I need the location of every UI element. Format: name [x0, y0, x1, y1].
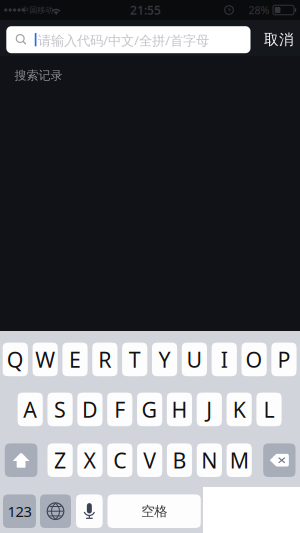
staticText: C — [113, 446, 126, 474]
staticText: X — [83, 446, 96, 474]
staticText: P — [277, 345, 290, 373]
button[interactable]: E — [62, 343, 88, 376]
staticText: Q — [7, 345, 24, 373]
staticText: Y — [158, 345, 170, 373]
staticText: U — [186, 345, 202, 373]
button[interactable]: Next keyboard — [40, 494, 71, 528]
button[interactable]: B — [167, 443, 192, 477]
staticText: H — [171, 395, 187, 423]
staticText: 28% — [248, 3, 269, 17]
staticText: W — [35, 345, 55, 373]
staticText: Z — [54, 446, 66, 474]
staticText: E — [69, 345, 81, 373]
button[interactable]: Numbers — [3, 494, 36, 528]
button[interactable]: Dictation — [76, 494, 103, 528]
staticText: A — [23, 395, 37, 423]
button[interactable]: X — [77, 443, 102, 477]
staticText: T — [129, 345, 141, 373]
staticText: L — [263, 395, 274, 423]
button[interactable]: M — [227, 443, 252, 477]
button[interactable]: P — [271, 343, 297, 376]
button[interactable]: T — [122, 343, 147, 376]
button[interactable]: O — [241, 343, 267, 376]
button[interactable]: Shift — [5, 443, 37, 477]
button[interactable]: N — [197, 443, 222, 477]
button[interactable]: Z — [47, 443, 73, 477]
staticText: 空格 — [141, 503, 167, 519]
button[interactable]: S — [47, 393, 73, 426]
staticText: 123 — [7, 501, 31, 521]
button[interactable]: G — [137, 393, 162, 426]
button[interactable]: U — [182, 343, 207, 376]
staticText: D — [82, 395, 98, 423]
staticText: B — [172, 446, 186, 474]
button[interactable]: K — [227, 393, 252, 426]
staticText: G — [142, 395, 158, 423]
button[interactable]: A — [18, 393, 43, 426]
staticText: 21:55 — [130, 2, 161, 18]
staticText: 中国移动 — [21, 5, 53, 15]
button[interactable]: D — [77, 393, 102, 426]
staticText: J — [206, 395, 212, 423]
staticText: R — [98, 345, 111, 373]
button[interactable]: F — [107, 393, 132, 426]
button[interactable]: Y — [152, 343, 177, 376]
staticText: V — [143, 446, 156, 474]
staticText: S — [54, 395, 66, 423]
button[interactable]: H — [167, 393, 192, 426]
button[interactable]: W — [33, 343, 58, 376]
staticText: 请输入代码/中文/全拼/首字母 — [38, 31, 209, 49]
staticText: K — [233, 395, 246, 423]
button[interactable]: Q — [3, 343, 28, 376]
staticText: 搜索记录 — [14, 68, 62, 83]
button[interactable]: L — [256, 393, 282, 426]
button[interactable]: V — [137, 443, 162, 477]
staticText: M — [230, 446, 249, 474]
staticText: O — [246, 345, 263, 373]
staticText: N — [201, 446, 217, 474]
button[interactable]: C — [107, 443, 132, 477]
button[interactable]: J — [197, 393, 222, 426]
button[interactable]: 取消 — [257, 27, 300, 51]
button[interactable]: I — [212, 343, 237, 376]
staticText: F — [114, 395, 125, 423]
staticText: I — [221, 345, 228, 373]
button[interactable]: Delete — [263, 443, 295, 477]
button[interactable]: Space — [107, 494, 201, 528]
button[interactable]: R — [92, 343, 117, 376]
staticText: 取消 — [264, 30, 294, 48]
